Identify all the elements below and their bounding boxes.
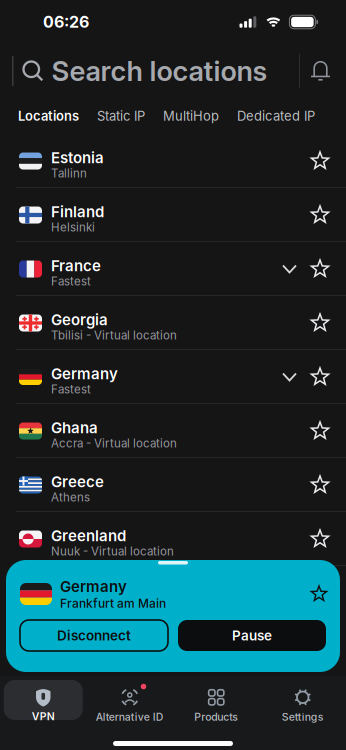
staticText: Greece: [51, 473, 104, 491]
staticText: Search locations: [51, 55, 267, 87]
staticText: 06:26: [43, 13, 89, 31]
staticText: Disconnect: [57, 627, 131, 643]
staticText: MultiHop: [163, 108, 219, 124]
staticText: Dedicated IP: [237, 108, 315, 124]
staticText: Athens: [51, 491, 90, 504]
button[interactable]: Greece: [0, 458, 346, 512]
staticText: Greenland: [51, 527, 126, 545]
staticText: Finland: [51, 203, 104, 221]
staticText: Alternative ID: [96, 711, 164, 723]
staticText: Germany: [60, 578, 127, 595]
staticText: Helsinki: [51, 221, 95, 234]
staticText: Nuuk - Virtual location: [51, 545, 174, 558]
staticText: Settings: [282, 711, 324, 723]
staticText: Fastest: [51, 275, 91, 288]
staticText: Pause: [232, 627, 272, 643]
staticText: Accra - Virtual location: [51, 437, 177, 450]
button[interactable]: [300, 60, 346, 81]
staticText: Tbilisi - Virtual location: [51, 329, 177, 342]
staticText: France: [51, 257, 101, 275]
button[interactable]: Germany: [0, 350, 346, 404]
staticText: Georgia: [51, 311, 108, 329]
staticText: Ghana: [51, 419, 98, 437]
button[interactable]: Ghana: [0, 404, 346, 458]
staticText: VPN: [32, 710, 55, 723]
button[interactable]: Alternative ID: [86, 680, 173, 720]
staticText: Locations: [18, 108, 79, 124]
button[interactable]: Products: [173, 680, 259, 720]
button[interactable]: France: [0, 242, 346, 296]
staticText: Estonia: [51, 149, 104, 167]
button[interactable]: VPN: [0, 680, 86, 720]
button[interactable]: Estonia: [0, 134, 346, 188]
button[interactable]: Dedicated IP: [219, 108, 315, 124]
staticText: Tallinn: [51, 167, 87, 180]
button[interactable]: Settings: [259, 680, 346, 720]
button[interactable]: Georgia: [0, 296, 346, 350]
staticText: Fastest: [51, 383, 91, 396]
button[interactable]: Disconnect: [20, 620, 168, 651]
staticText: Frankfurt am Main: [60, 596, 166, 610]
button[interactable]: MultiHop: [145, 108, 219, 124]
button[interactable]: [311, 586, 340, 602]
button[interactable]: Static IP: [79, 108, 145, 124]
staticText: Static IP: [97, 108, 145, 124]
staticText: Products: [194, 711, 238, 723]
button[interactable]: Search locations: [13, 55, 267, 87]
button[interactable]: Pause: [178, 620, 326, 651]
button[interactable]: Locations: [18, 108, 79, 124]
staticText: Germany: [51, 365, 118, 383]
button[interactable]: Finland: [0, 188, 346, 242]
button[interactable]: Greenland: [0, 512, 346, 566]
